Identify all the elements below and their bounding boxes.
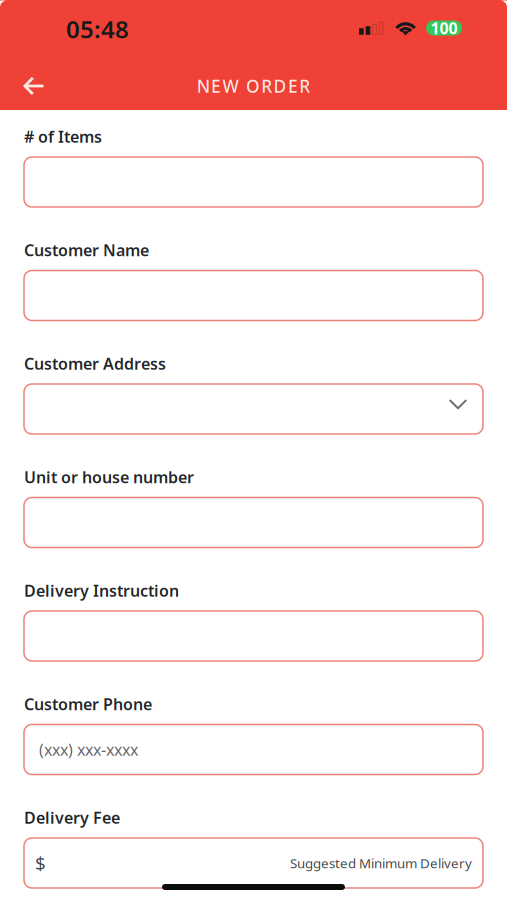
button[interactable]: $ bbox=[24, 825, 483, 888]
staticText: Delivery Instruction bbox=[24, 580, 179, 601]
button[interactable] bbox=[24, 144, 483, 207]
staticText: $ bbox=[35, 851, 46, 875]
staticText: 05:48 bbox=[66, 13, 129, 45]
staticText: Delivery Fee bbox=[24, 807, 120, 828]
staticText: (xxx) xxx-xxxx bbox=[39, 739, 138, 760]
button[interactable] bbox=[24, 371, 483, 434]
staticText: # of Items bbox=[24, 126, 102, 147]
staticText: Customer Phone bbox=[24, 693, 152, 715]
staticText: Suggested Minimum Delivery bbox=[290, 854, 472, 872]
button[interactable] bbox=[24, 598, 483, 661]
button[interactable]: (xxx) xxx-xxxx bbox=[24, 711, 483, 774]
staticText: 100 bbox=[431, 17, 458, 39]
staticText: Unit or house number bbox=[24, 466, 194, 488]
staticText: NEW ORDER bbox=[197, 74, 310, 97]
button[interactable]: Back bbox=[0, 63, 57, 103]
button[interactable] bbox=[24, 257, 483, 320]
button[interactable] bbox=[24, 484, 483, 547]
staticText: Customer Name bbox=[24, 239, 149, 261]
staticText: Customer Address bbox=[24, 353, 166, 374]
